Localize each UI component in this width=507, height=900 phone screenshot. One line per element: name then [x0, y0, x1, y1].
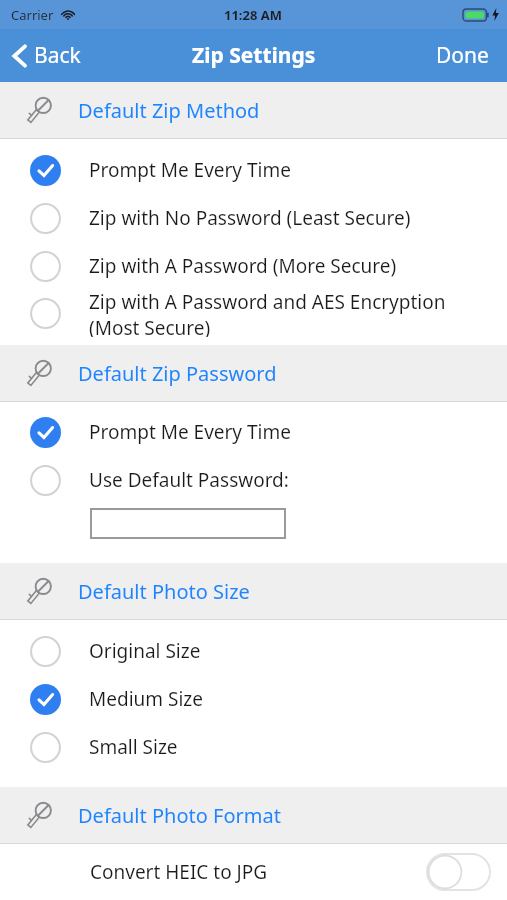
staticText: Original Size	[89, 638, 201, 664]
staticText: Default Photo Size	[78, 578, 250, 605]
button[interactable]: Convert HEIC to JPG	[0, 844, 507, 900]
staticText: Zip with A Password and AES Encryption	[89, 289, 446, 315]
staticText: Zip Settings	[192, 41, 316, 70]
staticText: Done	[436, 41, 489, 70]
button[interactable]: Zip with No Password (Least Secure)	[0, 201, 507, 235]
staticText: 11:28 AM	[224, 6, 283, 24]
button[interactable]: Small Size	[0, 730, 507, 764]
button[interactable]: Prompt Me Every Time	[0, 153, 507, 187]
button[interactable]: Back	[0, 29, 93, 82]
button[interactable]: Done	[418, 29, 507, 82]
staticText: Prompt Me Every Time	[89, 419, 291, 445]
button[interactable]: Use Default Password:	[0, 463, 507, 497]
staticText: Small Size	[89, 734, 178, 760]
button[interactable]: Original Size	[0, 634, 507, 668]
staticText: Default Zip Password	[78, 360, 277, 387]
button[interactable]: Zip with A Password and AES Encryption	[0, 289, 507, 337]
staticText: Zip with No Password (Least Secure)	[89, 205, 411, 231]
staticText: Default Zip Method	[78, 97, 260, 124]
staticText: Carrier	[11, 6, 54, 24]
staticText: (Most Secure)	[89, 315, 211, 337]
staticText: Medium Size	[89, 686, 203, 712]
button[interactable]	[90, 508, 286, 539]
button[interactable]: Prompt Me Every Time	[0, 415, 507, 449]
staticText: Back	[34, 41, 81, 70]
button[interactable]: Zip with A Password (More Secure)	[0, 249, 507, 283]
staticText: Convert HEIC to JPG	[90, 859, 268, 885]
staticText: Default Photo Format	[78, 802, 281, 829]
other: Convert HEIC to JPG toggle	[427, 854, 490, 890]
button[interactable]: Medium Size	[0, 682, 507, 716]
staticText: Use Default Password:	[89, 467, 289, 493]
staticText: Prompt Me Every Time	[89, 157, 291, 183]
staticText: Zip with A Password (More Secure)	[89, 253, 397, 279]
